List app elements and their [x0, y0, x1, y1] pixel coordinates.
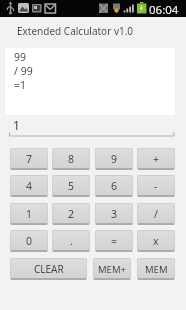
staticText: .: [70, 234, 73, 248]
staticText: 5: [68, 179, 75, 193]
staticText: +: [153, 152, 160, 166]
button[interactable]: .: [52, 230, 90, 252]
button[interactable]: 8: [52, 148, 90, 170]
button[interactable]: =: [95, 230, 133, 252]
button[interactable]: 4: [10, 175, 48, 197]
button[interactable]: 0: [10, 230, 48, 252]
staticText: =1: [14, 78, 27, 92]
button[interactable]: -: [137, 175, 175, 197]
staticText: -: [154, 179, 158, 193]
staticText: /: [154, 207, 158, 221]
button[interactable]: 2: [52, 203, 90, 225]
staticText: CLEAR: [34, 262, 64, 276]
staticText: 1: [13, 117, 20, 133]
staticText: 0: [26, 234, 33, 248]
button[interactable]: 6: [95, 175, 133, 197]
staticText: 9: [111, 152, 118, 166]
button[interactable]: 3: [95, 203, 133, 225]
staticText: 3: [111, 207, 118, 221]
button[interactable]: 7: [10, 148, 48, 170]
button[interactable]: +: [137, 148, 175, 170]
button[interactable]: MEM+: [93, 258, 131, 280]
staticText: 6: [111, 179, 118, 193]
staticText: 4: [26, 179, 33, 193]
button[interactable]: 5: [52, 175, 90, 197]
staticText: 06:04: [149, 2, 179, 18]
staticText: 8: [68, 152, 75, 166]
staticText: 1: [26, 207, 33, 221]
button[interactable]: 1: [10, 203, 48, 225]
button[interactable]: /: [137, 203, 175, 225]
button[interactable]: CLEAR: [10, 258, 87, 280]
staticText: MEM+: [98, 263, 126, 276]
staticText: / 99: [14, 64, 33, 78]
staticText: 7: [26, 152, 33, 166]
button[interactable]: 9: [95, 148, 133, 170]
staticText: x: [153, 234, 159, 248]
staticText: 99: [14, 50, 27, 64]
button[interactable]: [8, 115, 175, 138]
staticText: MEM: [145, 263, 168, 276]
button[interactable]: x: [137, 230, 175, 252]
staticText: 2: [68, 207, 75, 221]
staticText: =: [111, 234, 118, 248]
button[interactable]: MEM: [137, 258, 175, 280]
staticText: Extended Calculator v1.0: [17, 24, 134, 38]
